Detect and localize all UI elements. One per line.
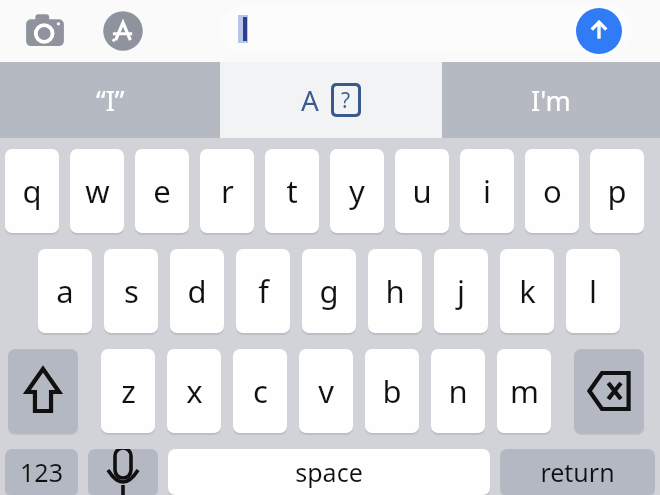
staticText: h — [385, 270, 405, 312]
staticText: e — [153, 170, 171, 212]
staticText: space — [295, 455, 363, 489]
button[interactable]: “I” — [0, 62, 220, 138]
button[interactable]: 123 — [5, 449, 78, 495]
button[interactable]: m — [497, 349, 551, 433]
button[interactable]: i — [460, 149, 514, 233]
staticText: ? — [341, 86, 351, 114]
button[interactable]: Dictation — [88, 449, 158, 495]
staticText: u — [412, 170, 432, 212]
staticText: x — [186, 370, 203, 412]
staticText: m — [510, 370, 539, 412]
button[interactable]: t — [265, 149, 319, 233]
button[interactable]: d — [170, 249, 224, 333]
staticText: l — [589, 270, 597, 312]
button[interactable]: Send — [576, 8, 622, 54]
button[interactable]: Camera — [24, 10, 66, 52]
staticText: v — [318, 370, 334, 412]
button[interactable] — [220, 6, 632, 52]
button[interactable]: n — [431, 349, 485, 433]
button[interactable]: l — [566, 249, 620, 333]
staticText: z — [121, 370, 136, 412]
staticText: w — [85, 170, 110, 212]
staticText: s — [124, 270, 139, 312]
staticText: A — [301, 81, 319, 119]
button[interactable]: return — [500, 449, 655, 495]
button[interactable]: space — [168, 449, 490, 495]
button[interactable]: o — [525, 149, 579, 233]
button[interactable]: u — [395, 149, 449, 233]
button[interactable]: Backspace — [574, 349, 644, 433]
staticText: “I” — [96, 82, 125, 119]
button[interactable]: e — [135, 149, 189, 233]
button[interactable]: p — [590, 149, 644, 233]
staticText: p — [607, 170, 627, 212]
button[interactable]: r — [200, 149, 254, 233]
staticText: return — [540, 455, 615, 489]
staticText: d — [187, 270, 207, 312]
button[interactable]: f — [236, 249, 290, 333]
staticText: q — [22, 170, 42, 212]
button[interactable]: y — [330, 149, 384, 233]
staticText: j — [457, 270, 465, 312]
button[interactable]: c — [233, 349, 287, 433]
button[interactable]: a — [38, 249, 92, 333]
staticText: 123 — [20, 455, 63, 489]
button[interactable]: g — [302, 249, 356, 333]
button[interactable]: k — [500, 249, 554, 333]
button[interactable]: z — [101, 349, 155, 433]
staticText: f — [258, 270, 269, 312]
staticText: c — [253, 370, 268, 412]
button[interactable]: q — [5, 149, 59, 233]
button[interactable]: A — [220, 62, 442, 138]
staticText: n — [448, 370, 468, 412]
button[interactable]: App Store — [100, 8, 146, 54]
button[interactable]: I'm — [442, 62, 660, 138]
button[interactable]: x — [167, 349, 221, 433]
staticText: I'm — [531, 82, 571, 119]
button[interactable]: j — [434, 249, 488, 333]
button[interactable]: v — [299, 349, 353, 433]
staticText: g — [319, 270, 339, 312]
button[interactable]: Shift — [8, 349, 78, 433]
staticText: i — [483, 170, 491, 212]
staticText: y — [349, 170, 365, 212]
staticText: b — [382, 370, 402, 412]
staticText: r — [221, 170, 234, 212]
button[interactable]: w — [70, 149, 124, 233]
button[interactable]: b — [365, 349, 419, 433]
button[interactable]: h — [368, 249, 422, 333]
staticText: a — [56, 270, 74, 312]
staticText: o — [543, 170, 562, 212]
staticText: t — [286, 170, 298, 212]
button[interactable]: s — [104, 249, 158, 333]
staticText: k — [519, 270, 536, 312]
